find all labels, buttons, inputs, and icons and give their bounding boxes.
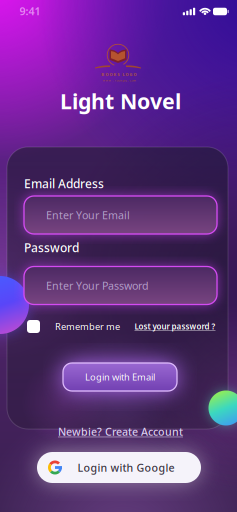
staticText: Login with Email bbox=[85, 371, 155, 383]
button[interactable]: Newbie? Create Account bbox=[58, 424, 183, 439]
staticText: Password bbox=[24, 239, 79, 255]
button[interactable]: Remember me bbox=[27, 320, 147, 333]
staticText: WWW . YOURSITE . COM bbox=[102, 79, 135, 82]
button[interactable]: Login with Email bbox=[63, 363, 177, 391]
staticText: Enter Your Password bbox=[46, 278, 149, 293]
staticText: Light Novel bbox=[60, 87, 181, 115]
button[interactable]: Lost your password ? bbox=[134, 321, 215, 332]
staticText: B O O K S L O G O bbox=[101, 72, 136, 77]
button[interactable]: Enter Your Email bbox=[24, 196, 217, 234]
staticText: 9:41 bbox=[19, 4, 40, 18]
staticText: Newbie? Create Account bbox=[58, 424, 183, 439]
staticText: Email Address bbox=[24, 175, 104, 191]
staticText: Login with Google bbox=[77, 460, 174, 475]
button[interactable]: Login with Google bbox=[37, 452, 201, 483]
button[interactable]: Enter Your Password bbox=[24, 266, 217, 304]
staticText: Enter Your Email bbox=[46, 208, 130, 222]
staticText: Lost your password ? bbox=[134, 321, 215, 332]
staticText: Remember me bbox=[55, 320, 120, 333]
